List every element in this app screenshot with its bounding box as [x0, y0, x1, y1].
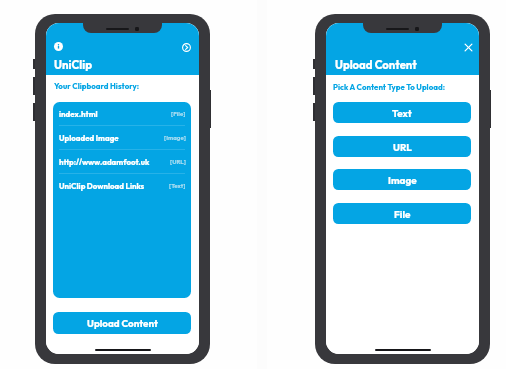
- staticText: Pick A Content Type To Upload:: [333, 82, 445, 92]
- staticText: [Image]: [164, 134, 186, 142]
- button[interactable]: http://www.adamfoot.uk: [53, 150, 191, 173]
- button[interactable]: Image: [333, 169, 471, 190]
- button[interactable]: Text: [333, 102, 471, 123]
- button[interactable]: Uploaded Image: [53, 126, 191, 149]
- staticText: UniClip: [54, 58, 93, 72]
- staticText: Text: [392, 107, 412, 119]
- button[interactable]: index.html: [53, 102, 191, 125]
- staticText: URL: [393, 141, 412, 153]
- button[interactable]: Settings: [182, 43, 191, 52]
- button[interactable]: File: [333, 203, 471, 224]
- staticText: Uploaded Image: [59, 133, 119, 143]
- staticText: Image: [388, 174, 417, 186]
- staticText: Upload Content: [87, 317, 158, 329]
- staticText: index.html: [59, 109, 98, 119]
- button[interactable]: URL: [333, 136, 471, 157]
- button[interactable]: Close: [463, 42, 474, 53]
- staticText: [File]: [171, 110, 186, 118]
- staticText: Your Clipboard History:: [54, 81, 140, 91]
- staticText: [Text]: [169, 182, 186, 190]
- button[interactable]: Info: [54, 42, 63, 51]
- staticText: UniClip Download Links: [59, 181, 145, 191]
- staticText: http://www.adamfoot.uk: [59, 157, 150, 167]
- button[interactable]: Upload Content: [53, 312, 191, 334]
- button[interactable]: UniClip Download Links: [53, 174, 191, 197]
- staticText: File: [394, 208, 411, 220]
- staticText: [URL]: [170, 158, 186, 166]
- staticText: Upload Content: [335, 58, 417, 72]
